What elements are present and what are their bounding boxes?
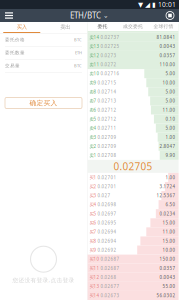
button[interactable]: Menu [0,9,18,22]
button[interactable]: 成交委托 [118,22,149,31]
staticText: 0.02725 [100,43,120,49]
staticText: 0.02687 [100,265,120,271]
staticText: 卖15 [90,25,100,31]
staticText: 0.02715 [97,80,117,86]
staticText: 成交委托 [123,23,143,29]
staticText: 0.02713 [97,98,117,104]
staticText: 0.02712 [97,107,117,113]
staticText: 9.90 [166,152,176,158]
button[interactable]: 委托 [88,22,118,31]
button[interactable]: 确定买入 [5,97,82,108]
button[interactable]: 全球行情 [149,22,179,31]
staticText: 卖11 [90,61,100,67]
staticText: 0.6889 [160,25,176,31]
staticText: 买10 [90,256,100,262]
staticText: 0.0234 [160,211,176,217]
staticText: 买4 [90,202,97,208]
staticText: 110.00 [160,61,176,67]
staticText: 卖14 [90,34,100,40]
staticText: 0.02694 [97,238,117,244]
button[interactable]: 卖出 [43,22,87,33]
staticText: 0.02714 [97,89,117,95]
staticText: 0.10 [166,116,176,122]
staticText: 15.00 [163,238,176,244]
staticText: 0.02737 [100,34,120,40]
staticText: 0.02673 [100,292,120,298]
staticText: ⌄ [103,12,109,19]
staticText: 0.02709 [97,143,117,149]
staticText: 买7 [90,229,97,235]
staticText: 150.00 [160,256,176,262]
staticText: 0.02708 [97,152,117,158]
staticText: 0.027 [97,193,111,199]
staticText: 55.00 [163,283,176,289]
button[interactable]: 买入 [0,22,43,33]
staticText: ▼ ◢ ▮ 10:01 [138,0,176,9]
button[interactable]: 您还没有登录,点击登录 [12,246,74,284]
staticText: 委托 [98,23,108,29]
staticText: 15.00 [163,220,176,226]
button[interactable]: ETH/BTC [70,10,109,21]
staticText: 0.0357 [160,52,176,58]
staticText: 0.0273 [100,52,117,58]
staticText: 5.00 [166,98,176,104]
staticText: 卖7 [90,98,97,104]
staticText: 1.00 [166,134,176,140]
staticText: 买8 [90,238,97,244]
staticText: 1.00 [166,174,176,180]
staticText: 卖1 [90,152,97,158]
staticText: 0.02709 [97,134,117,140]
button[interactable]: Chart [161,9,179,22]
staticText: 买14 [90,292,100,298]
staticText: 10.00 [163,80,176,86]
staticText: 0.0272 [100,61,117,67]
staticText: 56.0302 [157,292,176,298]
staticText: 买12 [90,274,100,280]
staticText: 0.02698 [97,202,117,208]
staticText: ETH/BTC [70,10,101,21]
staticText: 5.00 [166,125,176,131]
staticText: 10.00 [163,247,176,253]
staticText: 卖9 [90,80,97,86]
staticText: 买9 [90,247,97,253]
staticText: 0.02701 [97,174,117,180]
staticText: 买3 [90,193,97,199]
staticText: 买11 [90,265,100,271]
staticText: 5.00 [166,71,176,77]
staticText: 3.1724 [160,183,176,189]
staticText: 卖8 [90,89,97,95]
staticText: 卖5 [90,116,97,122]
staticText: 0.0043 [160,43,176,49]
staticText: 交易量 [5,63,20,69]
staticText: 0.02697 [97,211,117,217]
staticText: 卖10 [90,71,100,77]
staticText: 买6 [90,220,97,226]
staticText: 卖3 [90,134,97,140]
staticText: 委托价格 [5,37,25,43]
staticText: 0.02711 [97,125,117,131]
staticText: 卖6 [90,107,97,113]
staticText: 12.5367 [157,193,176,199]
staticText: 0.02716 [100,71,120,77]
staticText: ETH [75,50,82,55]
staticText: 委托数量 [5,50,25,56]
staticText: 买2 [90,183,97,189]
staticText: 0.02687 [100,256,120,262]
staticText: 您还没有登录,点击登录 [12,276,74,284]
staticText: 卖12 [90,52,100,58]
staticText: 买5 [90,211,97,217]
staticText: 11.00 [163,107,176,113]
staticText: 2.8047 [160,143,176,149]
staticText: BTC [74,63,82,68]
staticText: 确定买入 [29,99,57,107]
staticText: 6.50 [166,202,176,208]
staticText: 0.02747 [100,25,120,31]
staticText: 5.00 [166,89,176,95]
staticText: 11.00 [163,229,176,235]
staticText: 0.0357 [160,265,176,271]
staticText: 卖4 [90,125,97,131]
staticText: BTC [74,37,82,42]
staticText: 81.0841 [157,34,176,40]
staticText: 0.0268 [100,274,117,280]
staticText: 0.02695 [97,220,117,226]
